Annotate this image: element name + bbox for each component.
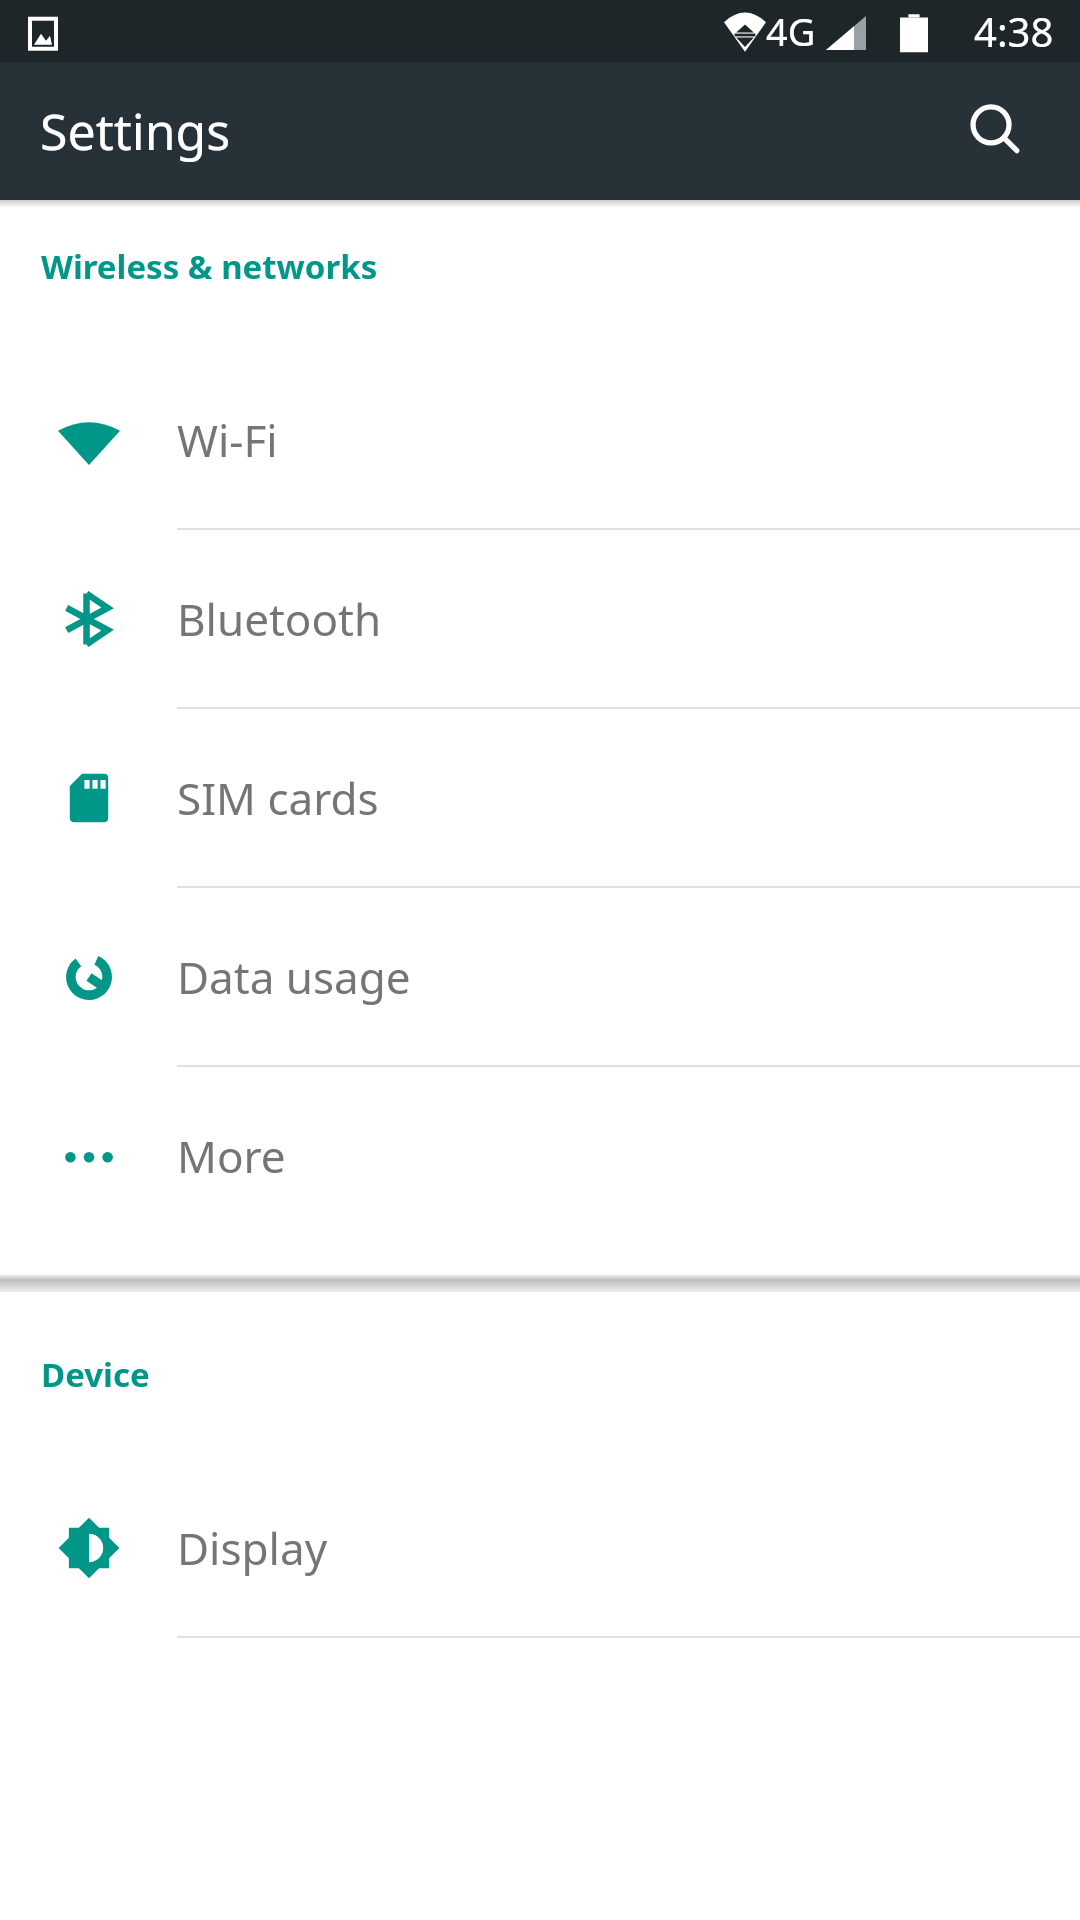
button[interactable]: Search xyxy=(948,83,1044,179)
staticText: Wi-Fi xyxy=(177,410,278,470)
staticText: Data usage xyxy=(177,947,411,1007)
staticText: Display xyxy=(177,1518,328,1578)
button[interactable]: Data usage xyxy=(0,888,1080,1067)
staticText: 4:38 xyxy=(974,4,1054,58)
staticText: 4G xyxy=(766,5,816,57)
staticText: Bluetooth xyxy=(177,589,382,649)
staticText: Settings xyxy=(40,97,231,165)
staticText: SIM cards xyxy=(177,768,379,828)
button[interactable]: More xyxy=(0,1067,1080,1244)
button[interactable]: Bluetooth xyxy=(0,530,1080,709)
button[interactable]: Wi-Fi xyxy=(0,351,1080,530)
button[interactable]: Display xyxy=(0,1459,1080,1638)
staticText: More xyxy=(177,1126,286,1186)
staticText: Device xyxy=(41,1352,150,1397)
button[interactable]: SIM cards xyxy=(0,709,1080,888)
staticText: Wireless & networks xyxy=(41,244,378,289)
